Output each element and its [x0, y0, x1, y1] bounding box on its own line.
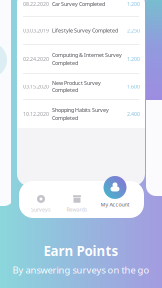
staticText: 03.03.2019 [23, 27, 49, 34]
staticText: 1.600 [127, 83, 140, 90]
staticText: 2.400 [127, 110, 140, 118]
staticText: My Account [100, 201, 129, 208]
staticText: 1.200 [127, 55, 140, 63]
staticText: 2.250 [127, 27, 140, 34]
staticText: 08.22.2020 [23, 0, 49, 8]
staticText: New Product Survey Completed [52, 79, 101, 94]
staticText: 10.12.2020 [23, 110, 49, 118]
staticText: Car Survey Completed [52, 0, 105, 8]
staticText: 1.200 [127, 0, 140, 8]
staticText: Lifestyle Survey Completed [52, 27, 118, 34]
staticText: Completed [52, 114, 78, 122]
staticText: Shopping Habits Survey [52, 106, 109, 113]
staticText: By answering surveys on the go [12, 264, 149, 276]
staticText: 03.15.2020 [23, 83, 49, 90]
button[interactable]: Surveys [21, 189, 61, 219]
staticText: Rewards [66, 206, 87, 213]
staticText: Completed [52, 59, 78, 67]
button[interactable]: My Account [95, 175, 135, 209]
staticText: Earn Points [43, 242, 118, 260]
staticText: Surveys [31, 206, 51, 213]
staticText: Computing & Internet Survey [52, 51, 122, 58]
button[interactable]: Rewards [57, 189, 97, 219]
staticText: 02.24.2020 [23, 55, 49, 63]
